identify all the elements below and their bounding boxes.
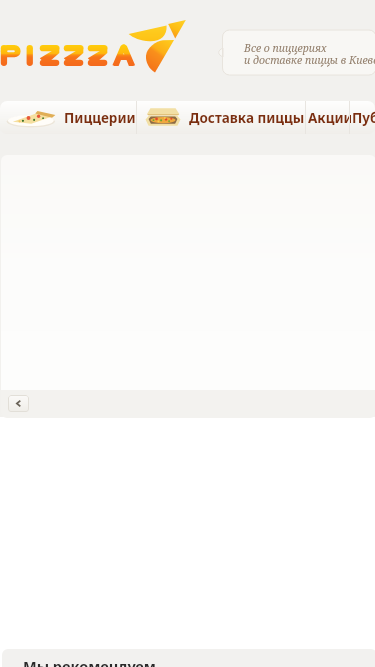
staticText: Пиццерии [64, 109, 136, 127]
staticText: Все о пиццериях и доставке пиццы в Киеве [244, 41, 375, 67]
staticText: Доставка пиццы [189, 109, 305, 127]
button[interactable]: Доставка пиццы [137, 101, 305, 134]
button[interactable]: Пиццерии [0, 101, 136, 134]
button[interactable]: Мы рекомендуем [2, 649, 375, 667]
staticText: Акции [308, 109, 351, 127]
button[interactable]: Акции [306, 101, 349, 134]
staticText: Мы рекомендуем [23, 656, 156, 667]
button[interactable]: Previous slide [8, 395, 29, 412]
staticText: Публ [352, 109, 375, 127]
button[interactable]: Публ [350, 101, 375, 134]
